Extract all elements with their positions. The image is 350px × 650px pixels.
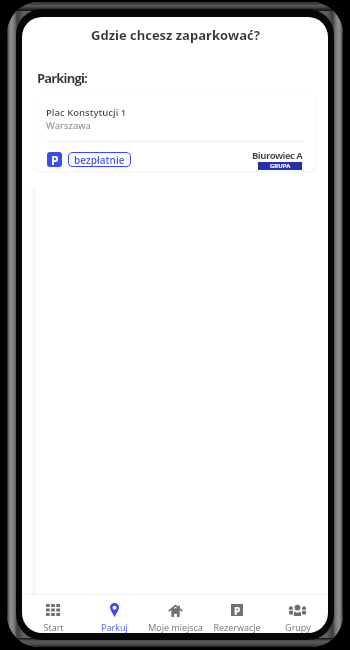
staticText: Moje miejsca [148,621,203,633]
staticText: bezpłatnie [74,153,125,167]
staticText: P [234,604,241,616]
button[interactable]: Plac Konstytucji 1 [35,96,315,171]
staticText: Gdzie chcesz zaparkować? [91,26,260,44]
staticText: Parkingi: [37,69,87,87]
staticText: GRUPA [270,162,291,170]
button[interactable]: Grupy [267,595,328,633]
button[interactable]: Moje miejsca [145,595,206,633]
button[interactable]: Parkuj [84,595,145,633]
staticText: Biurowiec A [252,149,303,162]
button[interactable]: P [206,595,267,633]
staticText: Grupy [285,621,311,633]
staticText: Plac Konstytucji 1 [46,106,127,119]
button[interactable]: bezpłatnie [68,152,131,167]
staticText: Warszawa [46,119,91,132]
staticText: Parkuj [101,621,128,633]
staticText: Rezerwacje [213,621,261,633]
staticText: Start [43,621,64,633]
staticText: P [51,152,59,167]
button[interactable]: Start [22,595,84,633]
